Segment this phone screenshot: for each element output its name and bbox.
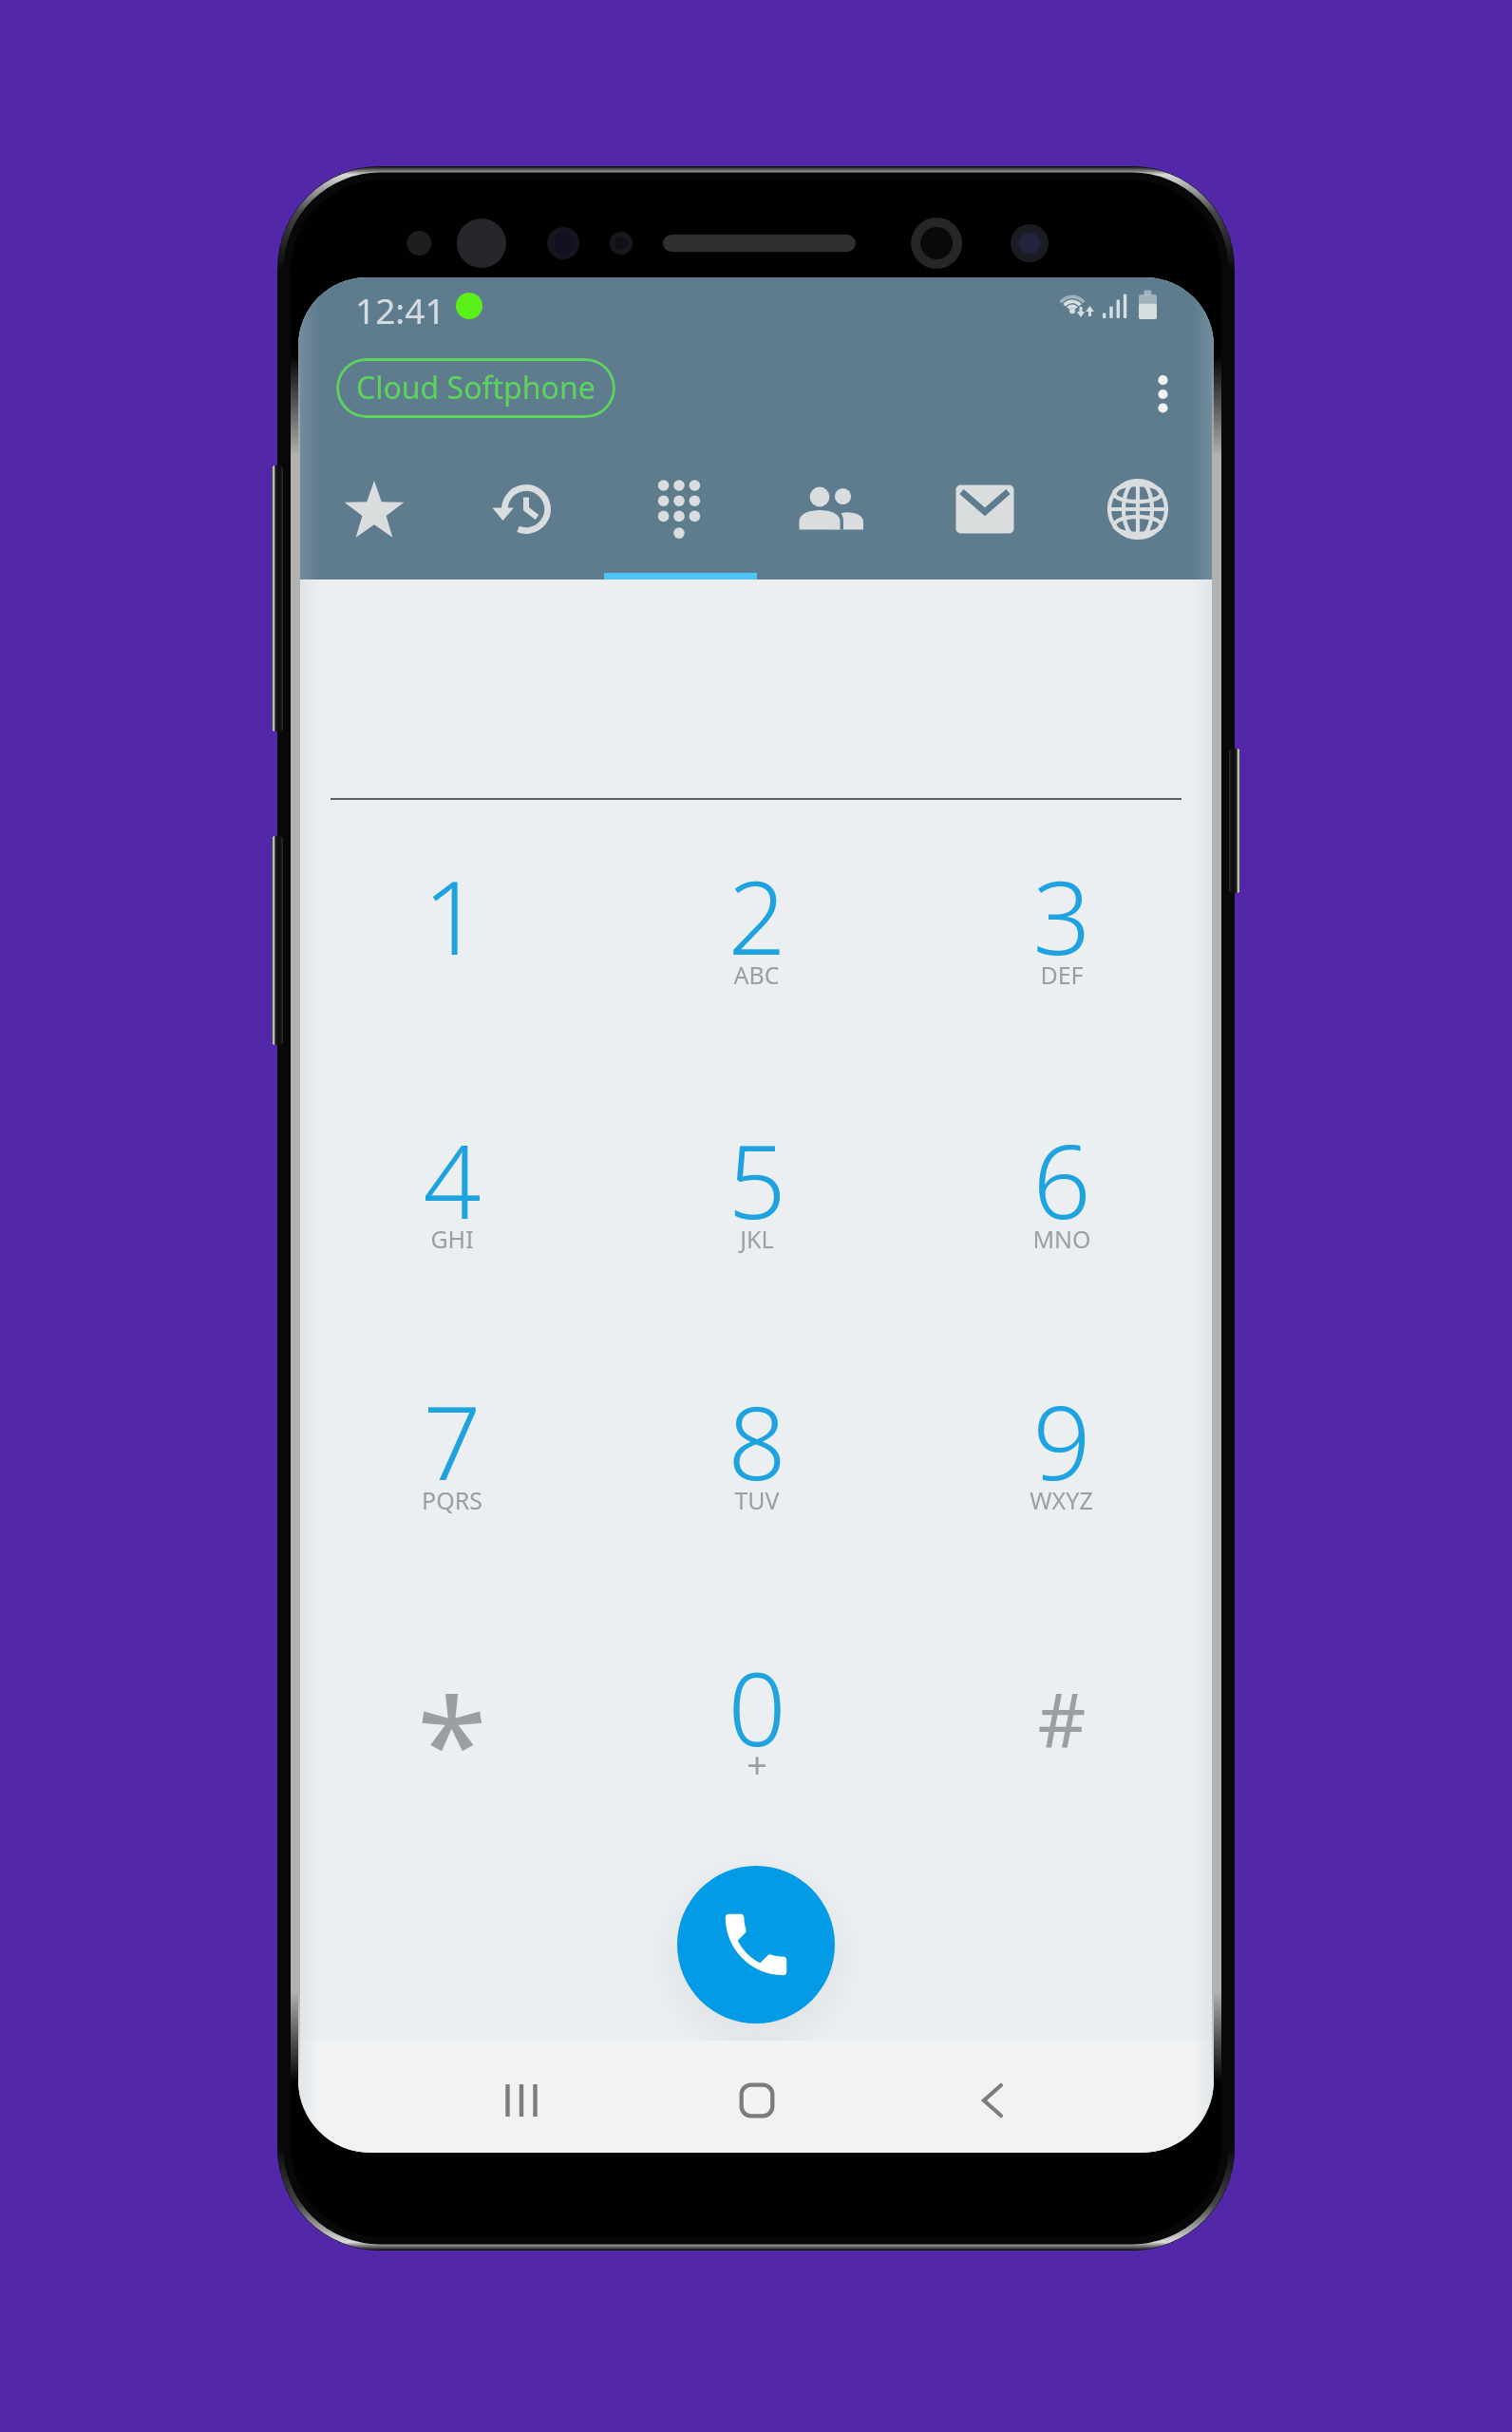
staticText: 4 xyxy=(423,1111,482,1249)
button[interactable]: Recents xyxy=(464,2043,578,2153)
button[interactable]: Back xyxy=(936,2043,1049,2153)
button[interactable]: 3 xyxy=(909,795,1214,1040)
button[interactable]: # xyxy=(909,1586,1214,1832)
staticText: 6 xyxy=(1032,1111,1091,1249)
staticText: WXYZ xyxy=(1030,1484,1093,1516)
button[interactable]: 1 xyxy=(299,795,604,1040)
button[interactable]: 2 xyxy=(604,795,909,1040)
staticText: 2 xyxy=(728,846,786,985)
button[interactable]: 9 xyxy=(909,1320,1214,1566)
staticText: # xyxy=(1037,1667,1087,1770)
staticText: GHI xyxy=(430,1223,474,1255)
button[interactable]: Home xyxy=(700,2043,814,2153)
staticText: + xyxy=(747,1739,767,1789)
button[interactable]: Favorites xyxy=(298,448,450,570)
button[interactable]: Contacts xyxy=(755,448,908,570)
staticText: TUV xyxy=(734,1484,780,1516)
button[interactable]: Call xyxy=(677,1866,835,2023)
staticText: 7 xyxy=(423,1372,482,1510)
button[interactable]: Cloud Softphone xyxy=(336,358,615,418)
staticText: JKL xyxy=(740,1223,774,1255)
staticText: 0 xyxy=(728,1638,786,1776)
staticText: * xyxy=(417,1655,487,1797)
staticText: 8 xyxy=(728,1372,786,1510)
button[interactable]: 8 xyxy=(604,1320,909,1566)
button[interactable]: 5 xyxy=(604,1059,909,1304)
button[interactable]: * xyxy=(299,1586,604,1832)
staticText: DEF xyxy=(1040,959,1084,991)
button[interactable]: Recents xyxy=(450,448,602,570)
staticText: ABC xyxy=(733,959,780,991)
staticText: 12:41 xyxy=(355,286,445,333)
button[interactable]: 0 xyxy=(604,1586,909,1832)
button[interactable]: 6 xyxy=(909,1059,1214,1304)
staticText: 5 xyxy=(728,1111,786,1249)
button[interactable]: Messages xyxy=(908,448,1061,570)
button[interactable]: Keypad xyxy=(602,448,755,570)
staticText: 9 xyxy=(1032,1372,1091,1510)
button[interactable]: 4 xyxy=(299,1059,604,1304)
staticText: Cloud Softphone xyxy=(356,367,595,408)
staticText: 1 xyxy=(423,846,482,985)
staticText: 3 xyxy=(1032,846,1091,985)
button[interactable]: Web xyxy=(1061,448,1214,570)
button[interactable]: More options xyxy=(1120,351,1206,437)
staticText: PQRS xyxy=(422,1484,482,1516)
button[interactable]: 7 xyxy=(299,1320,604,1566)
staticText: MNO xyxy=(1032,1223,1091,1255)
